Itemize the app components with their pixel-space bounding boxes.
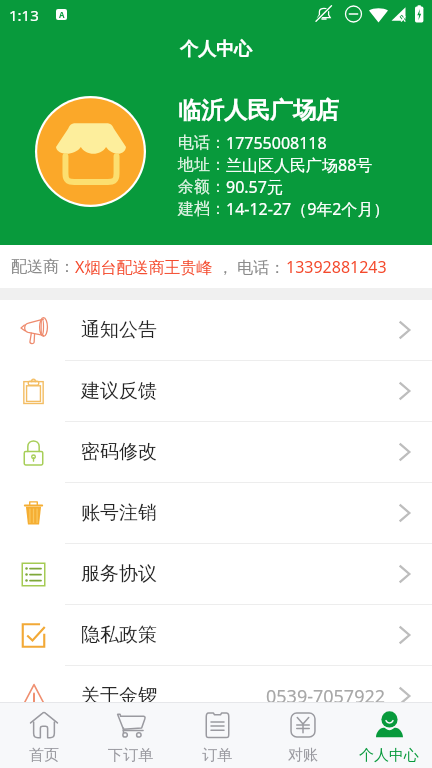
staticText: 90.57元 <box>226 176 283 198</box>
staticText: 密码修改 <box>81 440 157 464</box>
staticText: 下订单 <box>108 746 153 765</box>
staticText: 余额： <box>178 177 226 197</box>
staticText: 地址： <box>178 155 226 175</box>
staticText: 个人中心 <box>0 38 432 61</box>
staticText: 建议反馈 <box>81 379 157 403</box>
button[interactable]: 服务协议 <box>0 544 432 604</box>
button[interactable]: 个人中心 <box>346 703 432 768</box>
staticText: 配送商： <box>11 257 75 277</box>
staticText: 服务协议 <box>81 562 157 586</box>
staticText: 关于金锣 <box>81 684 157 708</box>
staticText: 0539-7057922 <box>266 684 386 709</box>
button[interactable]: 对账 <box>260 703 346 768</box>
staticText: 兰山区人民广场88号 <box>226 154 373 176</box>
button[interactable]: 首页 <box>0 703 87 768</box>
staticText: 17755008118 <box>226 132 327 154</box>
staticText: 临沂人民广场店 <box>178 96 339 125</box>
staticText: 通知公告 <box>81 318 157 342</box>
staticText: 建档： <box>178 199 226 219</box>
staticText: 首页 <box>29 746 59 765</box>
staticText: 账号注销 <box>81 501 157 525</box>
staticText: 隐私政策 <box>81 623 157 647</box>
staticText: 对账 <box>288 746 318 765</box>
button[interactable]: 通知公告 <box>0 300 432 360</box>
staticText: 个人中心 <box>359 746 419 765</box>
staticText: 14-12-27（9年2个月） <box>226 198 390 220</box>
button[interactable]: 隐私政策 <box>0 605 432 665</box>
staticText: 电话： <box>178 133 226 153</box>
staticText: 订单 <box>202 746 232 765</box>
button[interactable]: 关于金锣 <box>0 666 432 726</box>
button[interactable]: 密码修改 <box>0 422 432 482</box>
button[interactable]: 账号注销 <box>0 483 432 543</box>
staticText: A <box>59 9 65 20</box>
staticText: 1:13 <box>9 5 39 25</box>
button[interactable]: 下订单 <box>87 703 174 768</box>
button[interactable]: 建议反馈 <box>0 361 432 421</box>
button[interactable]: 订单 <box>174 703 260 768</box>
staticText: ， 电话： <box>213 256 286 278</box>
staticText: X烟台配送商王贵峰 <box>75 256 213 278</box>
staticText: 13392881243 <box>286 256 387 278</box>
